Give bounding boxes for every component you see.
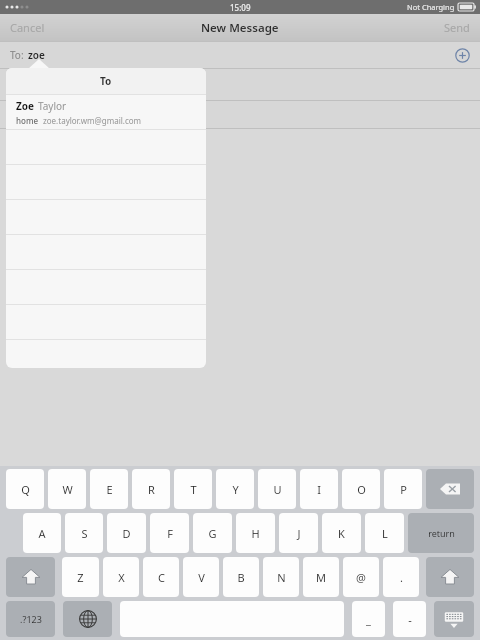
staticText: I: [317, 482, 321, 497]
button[interactable]: -: [393, 601, 426, 637]
button[interactable]: Cancel: [10, 14, 45, 41]
button[interactable]: J: [279, 513, 318, 553]
staticText: .: [400, 570, 403, 585]
staticText: T: [190, 482, 197, 497]
button[interactable]: @: [343, 557, 379, 597]
staticText: J: [297, 526, 301, 541]
button[interactable]: H: [236, 513, 275, 553]
staticText: New Message: [201, 20, 279, 36]
button[interactable]: U: [258, 469, 296, 509]
staticText: F: [167, 526, 173, 541]
button[interactable]: Shift: [426, 557, 474, 597]
staticText: Send: [444, 20, 470, 35]
button[interactable]: C: [143, 557, 179, 597]
button[interactable]: _: [352, 601, 385, 637]
staticText: K: [338, 526, 345, 541]
staticText: C: [158, 570, 165, 585]
staticText: return: [428, 527, 455, 539]
staticText: U: [273, 482, 282, 497]
button[interactable]: Change keyboard: [63, 601, 112, 637]
staticText: D: [122, 526, 131, 541]
staticText: .?123: [20, 613, 42, 625]
staticText: home: [16, 115, 39, 126]
staticText: B: [237, 570, 245, 585]
button[interactable]: Hide keyboard: [434, 601, 474, 637]
button[interactable]: W: [48, 469, 86, 509]
button[interactable]: Y: [216, 469, 254, 509]
button[interactable]: Backspace: [426, 469, 474, 509]
button[interactable]: Shift: [6, 557, 55, 597]
staticText: R: [148, 482, 155, 497]
button[interactable]: D: [107, 513, 146, 553]
button[interactable]: Q: [6, 469, 44, 509]
staticText: Cancel: [10, 20, 45, 35]
staticText: G: [208, 526, 217, 541]
button[interactable]: N: [263, 557, 299, 597]
staticText: W: [62, 482, 73, 497]
staticText: N: [277, 570, 286, 585]
staticText: O: [357, 482, 366, 497]
staticText: 15:09: [230, 2, 251, 13]
button[interactable]: S: [65, 513, 103, 553]
button[interactable]: V: [183, 557, 219, 597]
staticText: Not Charging: [407, 2, 455, 12]
button[interactable]: P: [384, 469, 422, 509]
button[interactable]: X: [103, 557, 139, 597]
staticText: Y: [232, 482, 239, 497]
button[interactable]: Send: [444, 14, 470, 41]
button[interactable]: T: [174, 469, 212, 509]
button[interactable]: Add contact: [452, 45, 472, 65]
button[interactable]: L: [365, 513, 404, 553]
staticText: Z: [77, 570, 84, 585]
button[interactable]: .?123: [6, 601, 55, 637]
button[interactable]: A: [23, 513, 61, 553]
button[interactable]: K: [322, 513, 361, 553]
button[interactable]: Zoe: [6, 95, 206, 129]
staticText: P: [400, 482, 407, 497]
button[interactable]: .: [383, 557, 419, 597]
staticText: To: [100, 74, 112, 88]
staticText: zoe: [28, 48, 45, 62]
staticText: Q: [21, 482, 30, 497]
staticText: V: [198, 570, 205, 585]
button[interactable]: O: [342, 469, 380, 509]
button[interactable]: F: [150, 513, 189, 553]
button[interactable]: R: [132, 469, 170, 509]
button[interactable]: B: [223, 557, 259, 597]
staticText: A: [38, 526, 46, 541]
staticText: @: [356, 570, 366, 585]
staticText: zoe.taylor.wm@gmail.com: [43, 115, 142, 126]
staticText: H: [251, 526, 260, 541]
button[interactable]: E: [90, 469, 128, 509]
button[interactable]: I: [300, 469, 338, 509]
staticText: X: [118, 570, 125, 585]
button[interactable]: Z: [62, 557, 99, 597]
staticText: _: [366, 612, 371, 627]
staticText: S: [81, 526, 88, 541]
staticText: L: [382, 526, 388, 541]
staticText: -: [408, 612, 412, 627]
button[interactable]: return: [408, 513, 474, 553]
staticText: To:: [10, 48, 24, 62]
staticText: E: [106, 482, 113, 497]
staticText: Zoe: [16, 99, 35, 113]
staticText: M: [316, 570, 326, 585]
staticText: Taylor: [38, 99, 67, 113]
button[interactable]: G: [193, 513, 232, 553]
button[interactable]: M: [303, 557, 339, 597]
